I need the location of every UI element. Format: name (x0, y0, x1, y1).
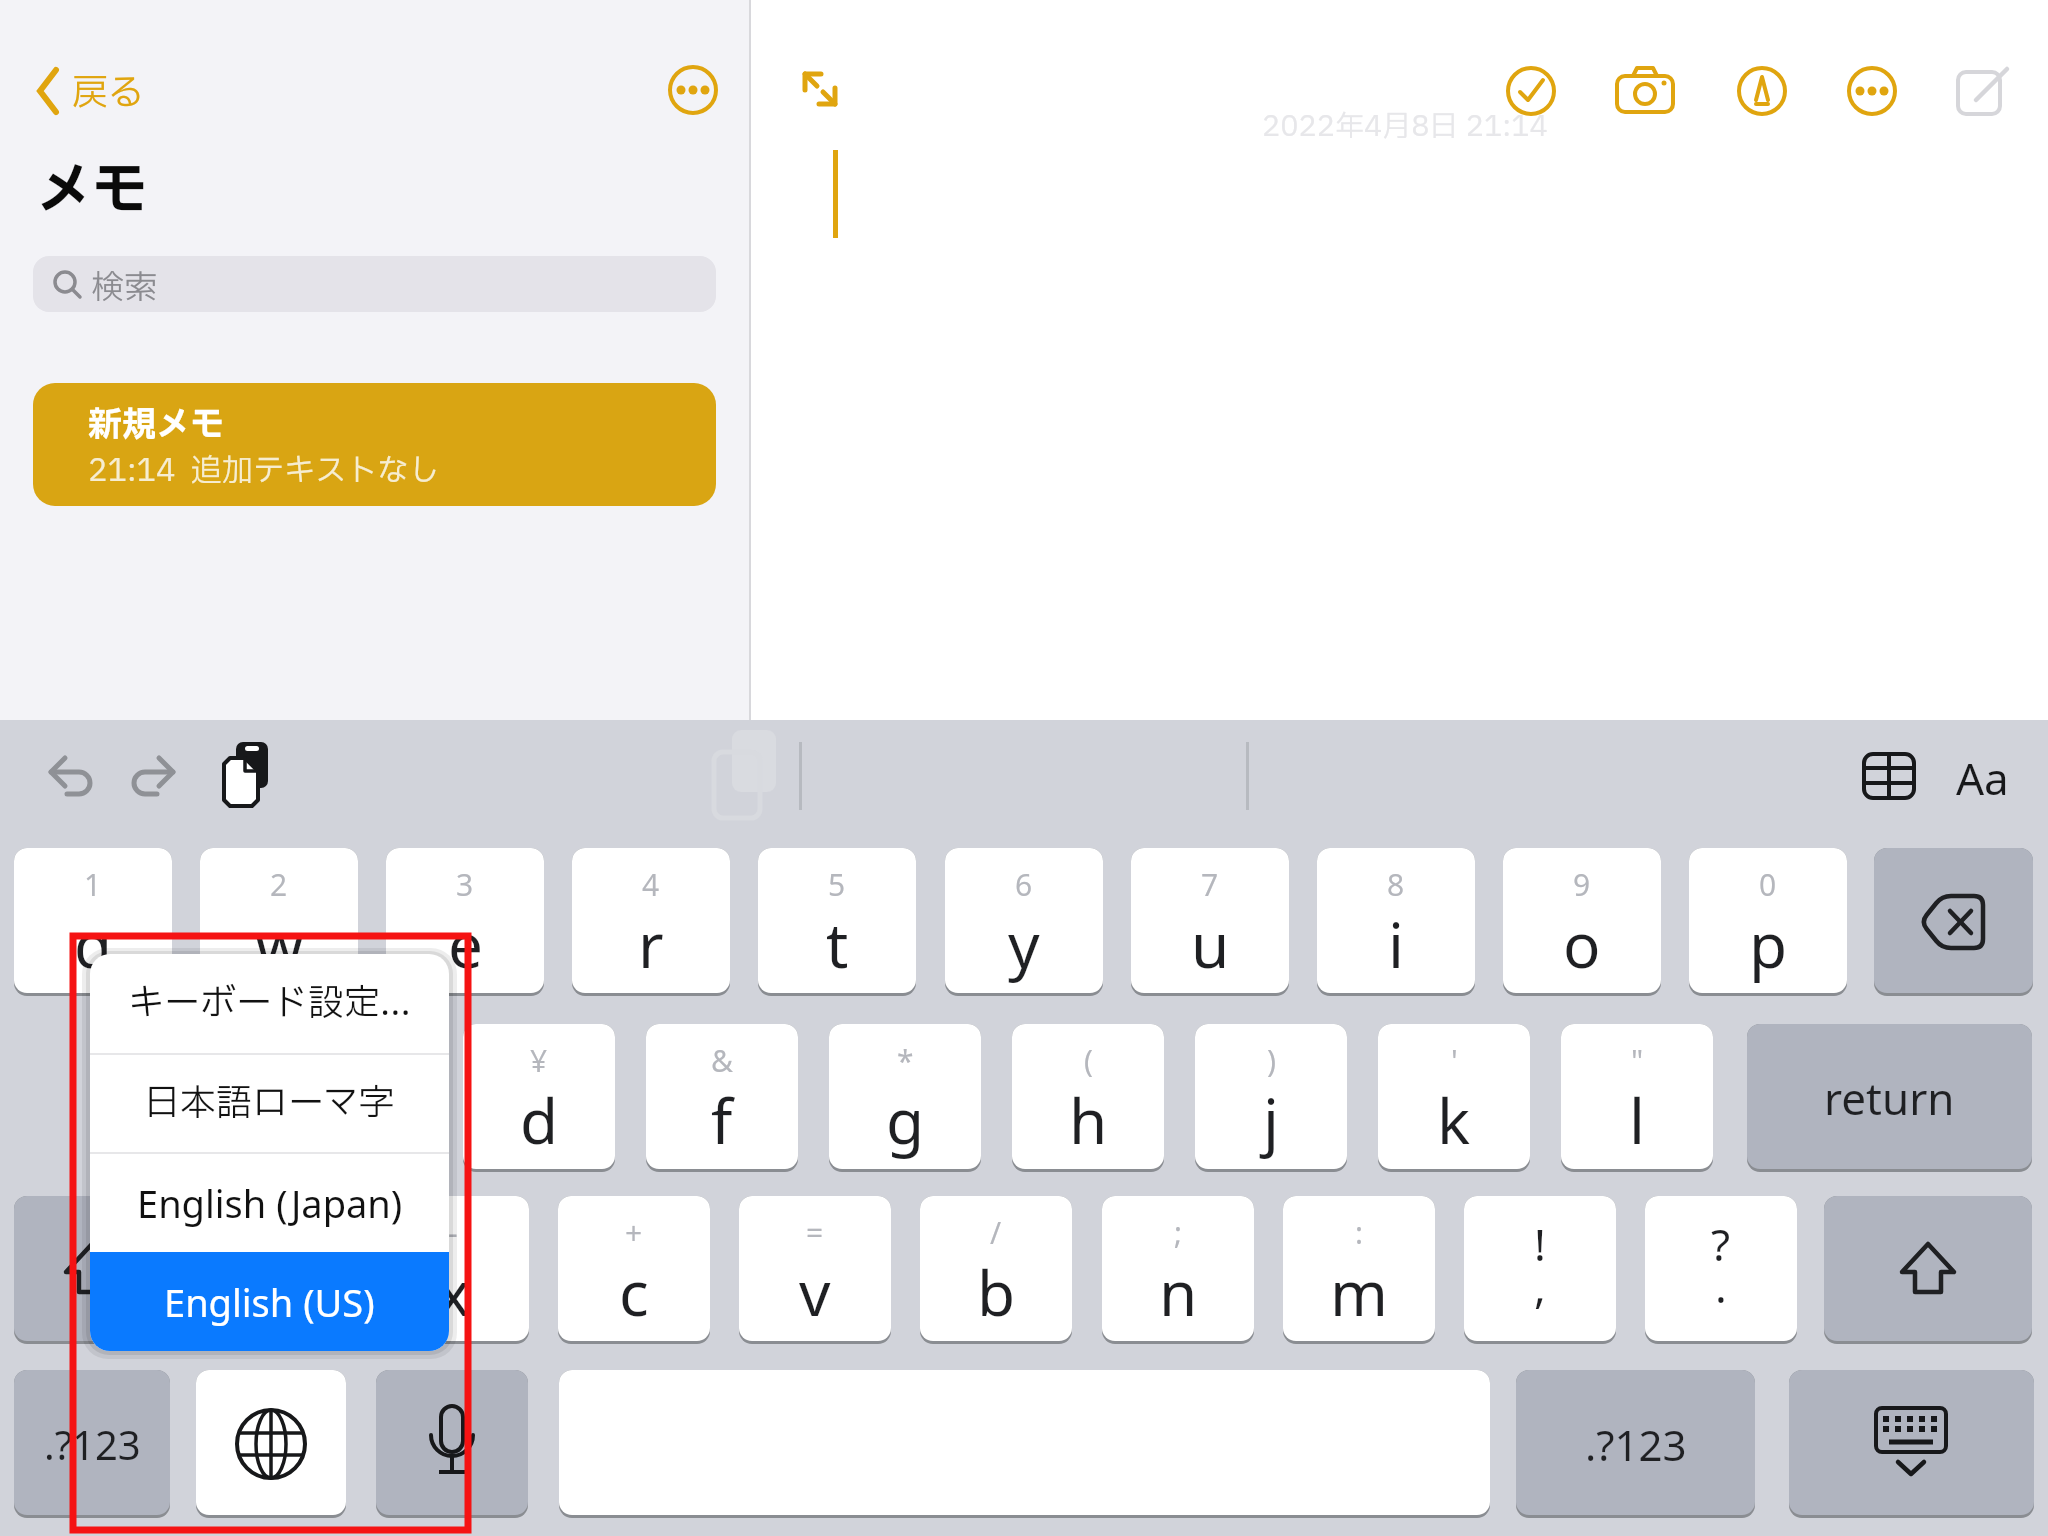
staticText: j (1263, 1078, 1279, 1162)
button[interactable]: / (920, 1196, 1072, 1344)
staticText: 7 (1201, 864, 1219, 905)
button[interactable] (14, 1196, 170, 1344)
button[interactable] (667, 64, 719, 116)
button[interactable]: - (377, 1196, 529, 1344)
staticText: 9 (1573, 864, 1591, 905)
staticText: * (897, 1040, 914, 1081)
button[interactable] (1506, 66, 1556, 116)
staticText: t (826, 902, 849, 986)
button[interactable] (790, 60, 850, 120)
button[interactable]: 戻る (30, 62, 160, 118)
button[interactable] (222, 742, 278, 808)
button[interactable] (1862, 752, 1916, 800)
button[interactable]: - (196, 1196, 348, 1344)
staticText: 2 (270, 864, 288, 905)
button[interactable]: English (Japan) (90, 1154, 449, 1251)
staticText: c (619, 1250, 649, 1334)
button[interactable]: 新規メモ (33, 383, 716, 506)
staticText: l (1629, 1078, 1645, 1162)
staticText: " (1631, 1040, 1644, 1081)
button[interactable] (1737, 66, 1787, 116)
button[interactable]: English (US) (90, 1252, 449, 1351)
staticText: h (1069, 1078, 1108, 1162)
staticText: f (711, 1078, 733, 1162)
button[interactable]: ) (1195, 1024, 1347, 1172)
button[interactable]: s (280, 1024, 432, 1172)
button[interactable]: ( (1012, 1024, 1164, 1172)
button[interactable]: 0 (1689, 848, 1847, 996)
staticText: English (US) (164, 1276, 375, 1328)
button[interactable]: & (646, 1024, 798, 1172)
button[interactable]: 7 (1131, 848, 1289, 996)
button[interactable]: .?123 (14, 1370, 170, 1518)
button[interactable]: a (97, 1024, 249, 1172)
staticText: r (638, 902, 664, 986)
button[interactable]: 3 (386, 848, 544, 996)
button[interactable] (1617, 66, 1673, 116)
button[interactable]: 8 (1317, 848, 1475, 996)
staticText: ! (1534, 1214, 1546, 1274)
button[interactable]: return (1747, 1024, 2032, 1172)
button[interactable]: 9 (1503, 848, 1661, 996)
button[interactable]: .?123 (1516, 1370, 1755, 1518)
staticText: i (1388, 902, 1404, 986)
staticText: v (799, 1250, 831, 1334)
button[interactable] (1824, 1196, 2032, 1344)
button[interactable] (559, 1370, 1490, 1518)
staticText: ; (1174, 1212, 1183, 1253)
staticText: メモ (36, 150, 148, 234)
staticText: ( (1084, 1040, 1093, 1081)
button[interactable]: ; (1102, 1196, 1254, 1344)
staticText: / (990, 1212, 1002, 1253)
staticText: k (1437, 1078, 1471, 1162)
button[interactable]: : (1283, 1196, 1435, 1344)
button[interactable]: = (739, 1196, 891, 1344)
staticText: return (1824, 1068, 1955, 1128)
staticText: z (257, 1250, 287, 1334)
button[interactable] (196, 1370, 346, 1518)
button[interactable] (1956, 64, 2012, 118)
staticText: Aa (1956, 748, 2009, 804)
button[interactable]: 4 (572, 848, 730, 996)
button[interactable] (376, 1370, 528, 1518)
staticText: p (1749, 902, 1788, 986)
button[interactable]: 2 (200, 848, 358, 996)
staticText: : (1355, 1212, 1364, 1253)
staticText: & (711, 1040, 733, 1081)
staticText: 21:14 追加テキストなし (88, 448, 439, 494)
staticText: .?123 (44, 1417, 141, 1471)
button[interactable]: キーボード設定... (90, 954, 449, 1053)
staticText: x (437, 1250, 470, 1334)
button[interactable]: ? (1645, 1196, 1797, 1344)
staticText: English (Japan) (137, 1177, 403, 1229)
button[interactable] (1874, 848, 2033, 996)
staticText: ' (1451, 1040, 1458, 1081)
button[interactable]: ! (1464, 1196, 1616, 1344)
button[interactable] (1847, 66, 1897, 116)
button[interactable] (1789, 1370, 2034, 1518)
button[interactable]: 6 (945, 848, 1103, 996)
button[interactable]: 1 (14, 848, 172, 996)
button[interactable]: * (829, 1024, 981, 1172)
staticText: .?123 (1585, 1416, 1687, 1473)
button[interactable] (128, 745, 184, 801)
staticText: ) (1267, 1040, 1276, 1081)
button[interactable]: 検索 (33, 256, 716, 312)
staticText: , (1534, 1256, 1546, 1316)
staticText: s (341, 1078, 371, 1162)
staticText: ¥ (530, 1040, 548, 1081)
staticText: - (448, 1212, 458, 1253)
button[interactable]: 5 (758, 848, 916, 996)
staticText: 0 (1759, 864, 1777, 905)
staticText: 1 (84, 864, 102, 905)
button[interactable] (40, 745, 96, 801)
staticText: = (806, 1212, 824, 1253)
button[interactable]: + (558, 1196, 710, 1344)
button[interactable]: " (1561, 1024, 1713, 1172)
button[interactable]: ¥ (463, 1024, 615, 1172)
button[interactable]: 日本語ローマ字 (90, 1055, 449, 1152)
staticText: - (267, 1212, 277, 1253)
button[interactable]: Aa (1944, 748, 2020, 804)
button[interactable]: ' (1378, 1024, 1530, 1172)
staticText: u (1191, 902, 1230, 986)
